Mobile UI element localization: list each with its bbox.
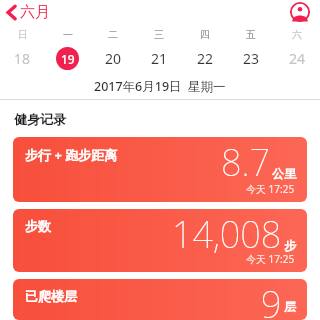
button[interactable]: Profile [288,0,312,24]
staticText: 8.7 [221,138,270,187]
staticText: 21 [151,49,168,68]
staticText: 步行 + 跑步距离 [25,146,118,164]
staticText: 22 [197,49,214,68]
staticText: 已爬楼层 [25,288,77,304]
staticText: 一 [63,28,73,41]
button[interactable]: 六月 [0,1,60,24]
staticText: 六月 [20,3,50,22]
button[interactable]: 22 [182,44,228,73]
button[interactable]: 19 [45,44,90,73]
staticText: 24 [289,49,306,68]
staticText: 日 [18,28,28,41]
staticText: 今天 17:25 [246,252,295,266]
button[interactable]: 已爬楼层 [13,279,307,320]
staticText: 今天 17:25 [246,182,295,196]
staticText: 六 [292,28,302,41]
button[interactable]: 18 [0,44,45,73]
staticText: 四 [200,28,210,41]
staticText: 19 [61,51,75,67]
button[interactable]: 步行 + 跑步距离 [13,137,307,202]
staticText: 二 [108,28,118,41]
staticText: 五 [246,28,256,41]
staticText: 健身记录 [14,111,66,127]
button[interactable]: 21 [136,44,182,73]
button[interactable]: 步数 [13,209,307,272]
staticText: 步数 [25,218,51,234]
staticText: 三 [154,28,164,41]
staticText: 公里 [272,166,296,181]
staticText: 步 [284,238,296,253]
staticText: 2017年6月19日 星期一 [94,78,226,95]
staticText: 20 [105,49,122,68]
button[interactable]: 20 [90,44,136,73]
button[interactable]: 23 [228,44,274,73]
staticText: 23 [243,49,260,68]
staticText: 9 [261,280,282,320]
staticText: 层 [284,299,296,314]
staticText: 18 [14,49,31,68]
staticText: 14,008 [172,210,282,259]
button[interactable]: 24 [274,44,320,73]
